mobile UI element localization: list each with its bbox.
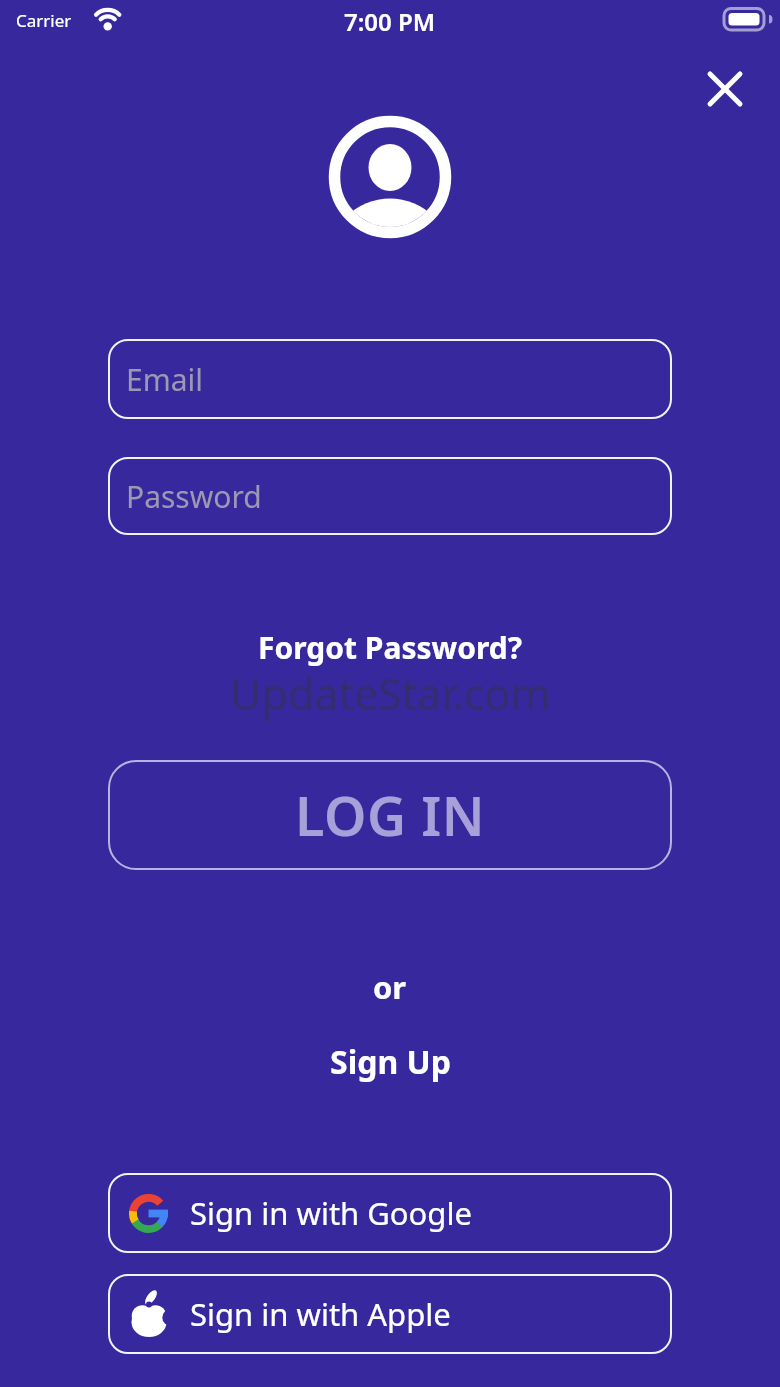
button[interactable]: Sign in with Google xyxy=(108,1173,672,1253)
staticText: UpdateStar.com xyxy=(230,664,551,723)
staticText: Sign in with Google xyxy=(190,1192,472,1234)
staticText: or xyxy=(373,966,407,1008)
staticText: LOG IN xyxy=(295,778,485,852)
button[interactable] xyxy=(700,64,750,114)
button[interactable]: Forgot Password? xyxy=(258,627,523,668)
staticText: Email xyxy=(126,359,204,400)
button[interactable]: Sign Up xyxy=(330,1040,451,1084)
staticText: Sign in with Apple xyxy=(190,1293,451,1335)
button[interactable]: LOG IN xyxy=(108,760,672,870)
button[interactable]: Sign in with Apple xyxy=(108,1274,672,1354)
staticText: Carrier xyxy=(16,9,72,32)
staticText: 7:00 PM xyxy=(344,5,436,38)
staticText: Password xyxy=(126,476,262,517)
button[interactable]: Password xyxy=(108,457,672,535)
button[interactable]: Email xyxy=(108,339,672,419)
